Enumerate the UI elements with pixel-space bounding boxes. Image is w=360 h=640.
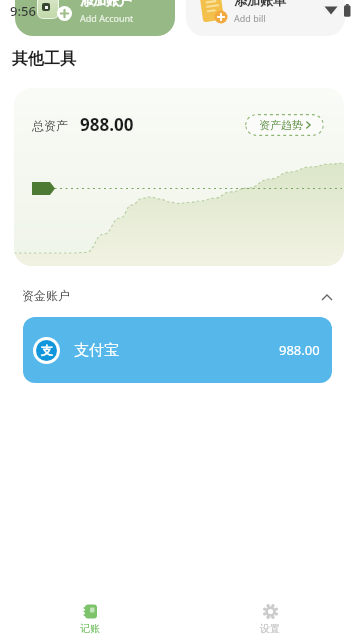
staticText: 988.00 [279, 341, 320, 359]
staticText: 资金账户 [22, 288, 70, 303]
staticText: 其他工具 [12, 49, 76, 69]
button[interactable]: 添加账单 [186, 0, 345, 36]
button[interactable]: 资产趋势 [245, 114, 324, 136]
staticText: 总资产 [32, 118, 68, 133]
staticText: 设置 [260, 622, 280, 635]
button[interactable]: 添加账户 [15, 0, 175, 36]
staticText: 9:56 [10, 2, 36, 20]
staticText: 添加账单 [234, 0, 286, 8]
button[interactable]: 支 [23, 317, 332, 383]
staticText: Add bill [234, 12, 266, 24]
button[interactable]: 设置 [180, 594, 360, 640]
staticText: 支 [41, 343, 53, 358]
staticText: 添加账户 [80, 0, 132, 8]
staticText: 支付宝 [74, 341, 119, 360]
button[interactable]: 资金账户 [0, 288, 360, 306]
button[interactable]: 记账 [0, 594, 180, 640]
staticText: Add Account [80, 12, 134, 24]
staticText: 988.00 [80, 113, 134, 136]
staticText: 记账 [80, 622, 100, 635]
staticText: 资产趋势 [259, 118, 303, 132]
